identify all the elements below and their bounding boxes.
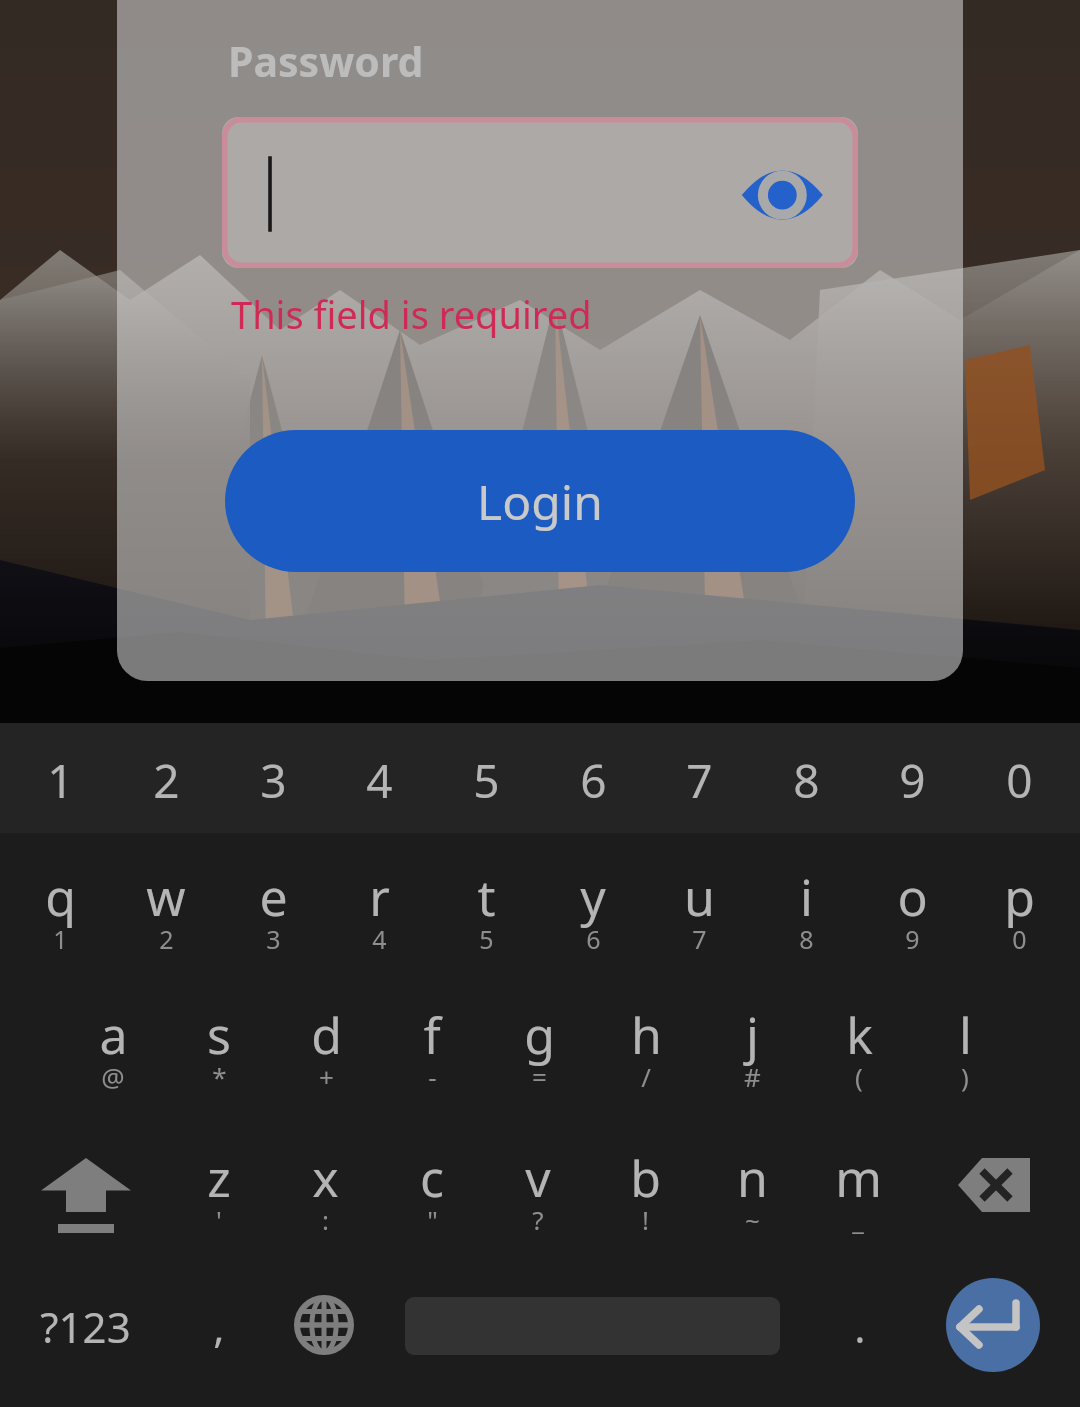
button[interactable]: Key m [805,1123,911,1253]
staticText: 1 [53,922,68,956]
staticText: d [311,1001,342,1069]
staticText: 6 [586,922,601,956]
staticText: _ [852,1202,864,1237]
staticText: e [259,863,288,931]
button[interactable]: Key d [272,983,378,1113]
button[interactable]: Login [225,430,855,572]
staticText: r [369,863,390,931]
staticText: @ [101,1059,125,1094]
staticText: + [319,1059,334,1094]
staticText: m [835,1144,882,1212]
button[interactable]: Shift [6,1123,166,1253]
button[interactable]: Key g [485,983,591,1113]
button[interactable]: Key i [752,843,858,973]
button[interactable]: Key 5 [433,723,539,833]
button[interactable]: Key 7 [646,723,752,833]
button[interactable]: Key 9 [859,723,965,833]
button[interactable]: Key 0 [965,723,1071,833]
staticText: a [99,1001,128,1069]
staticText: ( [855,1059,863,1094]
staticText: , [213,1298,225,1355]
button[interactable]: Key q [6,843,112,973]
button[interactable]: Key p [965,843,1071,973]
staticText: # [744,1059,761,1094]
staticText: 1 [47,749,74,812]
staticText: 5 [473,749,500,812]
button[interactable]: Key l [911,983,1017,1113]
button[interactable]: Key w [113,843,219,973]
staticText: w [146,863,186,931]
button[interactable]: Key z [166,1123,272,1253]
button[interactable]: Key b [592,1123,698,1253]
button[interactable] [222,117,858,268]
button[interactable]: Key u [646,843,752,973]
button[interactable]: Key o [859,843,965,973]
staticText: = [532,1059,547,1094]
staticText: 8 [793,749,820,812]
staticText: g [524,1001,555,1069]
button[interactable]: Key v [485,1123,591,1253]
staticText: l [959,1001,972,1069]
staticText: " [427,1202,438,1237]
staticText: . [854,1298,866,1355]
button[interactable]: Key k [805,983,911,1113]
staticText: - [428,1059,437,1094]
staticText: 8 [799,922,814,956]
button[interactable]: Key n [699,1123,805,1253]
staticText: 3 [266,922,281,956]
button[interactable]: Key h [592,983,698,1113]
button[interactable]: Key 4 [326,723,432,833]
staticText: h [631,1001,662,1069]
staticText: ?123 [40,1298,131,1355]
button[interactable]: Symbols [6,1263,166,1388]
button[interactable]: Key a [59,983,165,1113]
staticText: t [477,863,496,931]
staticText: q [45,863,76,931]
staticText: 4 [366,749,393,812]
staticText: s [207,1001,231,1069]
button[interactable]: Key e [219,843,325,973]
button[interactable]: Space [400,1263,785,1388]
staticText: k [846,1001,873,1069]
button[interactable]: Backspace [912,1123,1074,1253]
staticText: b [630,1144,661,1212]
staticText: ' [216,1202,222,1237]
staticText: 7 [692,922,707,956]
button[interactable]: Key 8 [752,723,858,833]
button[interactable]: Comma [166,1263,272,1388]
staticText: 4 [372,922,387,956]
button[interactable]: Key j [698,983,804,1113]
staticText: n [737,1144,768,1212]
button[interactable]: Key 1 [6,723,112,833]
button[interactable]: Key 2 [113,723,219,833]
staticText: v [525,1144,551,1212]
button[interactable]: Key 3 [219,723,325,833]
button[interactable]: Change language [272,1263,378,1388]
staticText: z [207,1144,231,1212]
staticText: c [420,1144,444,1212]
button[interactable]: Key 6 [539,723,645,833]
button[interactable]: Show password [727,145,837,245]
button[interactable]: Key t [433,843,539,973]
staticText: ? [532,1202,544,1237]
staticText: 7 [686,749,713,812]
button[interactable]: Key y [539,843,645,973]
button[interactable]: Key f [378,983,484,1113]
staticText: u [684,863,715,931]
staticText: ! [642,1202,649,1237]
staticText: 3 [260,749,287,812]
staticText: / [641,1059,651,1094]
button[interactable]: Key s [165,983,271,1113]
button[interactable]: Period [800,1263,915,1388]
staticText: 5 [479,922,494,956]
button[interactable]: Key r [326,843,432,973]
button[interactable]: Key x [272,1123,378,1253]
button[interactable]: Key c [379,1123,485,1253]
staticText: f [423,1001,441,1069]
staticText: 6 [580,749,607,812]
staticText: x [312,1144,339,1212]
button[interactable]: Enter [930,1263,1060,1388]
staticText: This field is required [231,288,592,338]
staticText: 0 [1006,749,1033,812]
staticText: i [800,863,813,931]
